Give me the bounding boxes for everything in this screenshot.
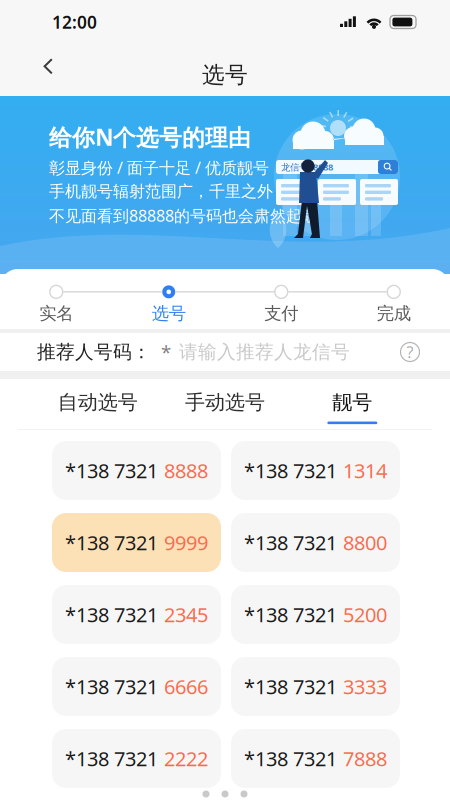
staticText: 龙信号88888 bbox=[281, 161, 333, 173]
button[interactable]: *138 7321 bbox=[52, 513, 221, 572]
staticText: 3333 bbox=[343, 673, 387, 700]
staticText: 自动选号 bbox=[58, 390, 138, 415]
staticText: 推荐人号码： bbox=[37, 340, 151, 363]
staticText: 给你N个选号的理由 bbox=[49, 122, 251, 152]
button[interactable]: 手动选号 bbox=[161, 379, 289, 429]
staticText: 实名 bbox=[39, 303, 73, 324]
staticText: 9999 bbox=[164, 529, 208, 556]
button[interactable]: Back bbox=[0, 46, 72, 94]
staticText: *138 7321 bbox=[65, 529, 158, 556]
button[interactable]: *138 7321 bbox=[52, 441, 221, 500]
staticText: *138 7321 bbox=[244, 673, 337, 700]
staticText: *138 7321 bbox=[244, 601, 337, 628]
staticText: 5200 bbox=[343, 601, 387, 628]
staticText: 6666 bbox=[164, 673, 208, 700]
staticText: *138 7321 bbox=[244, 529, 337, 556]
button[interactable]: *138 7321 bbox=[52, 585, 221, 644]
staticText: 7888 bbox=[343, 745, 387, 772]
button[interactable]: *138 7321 bbox=[52, 657, 221, 716]
staticText: * bbox=[161, 340, 171, 364]
staticText: 2222 bbox=[164, 745, 208, 772]
button[interactable]: 自动选号 bbox=[34, 379, 161, 429]
button[interactable]: 靓号 bbox=[289, 379, 416, 429]
staticText: 8800 bbox=[343, 529, 387, 556]
staticText: 8888 bbox=[164, 457, 208, 484]
button[interactable]: *138 7321 bbox=[231, 729, 400, 788]
staticText: *138 7321 bbox=[65, 457, 158, 484]
staticText: *138 7321 bbox=[65, 673, 158, 700]
staticText: 靓号 bbox=[332, 390, 372, 415]
staticText: *138 7321 bbox=[244, 745, 337, 772]
staticText: *138 7321 bbox=[244, 457, 337, 484]
staticText: 选号 bbox=[152, 303, 186, 324]
button[interactable]: *138 7321 bbox=[52, 729, 221, 788]
button[interactable]: *138 7321 bbox=[231, 585, 400, 644]
staticText: 12:00 bbox=[52, 10, 97, 33]
staticText: 选号 bbox=[202, 61, 248, 89]
staticText: 支付 bbox=[264, 303, 298, 324]
staticText: 请输入推荐人龙信号 bbox=[179, 340, 350, 363]
staticText: 不见面看到88888的号码也会肃然起敬 bbox=[49, 205, 318, 226]
staticText: *138 7321 bbox=[65, 601, 158, 628]
button[interactable]: *138 7321 bbox=[231, 513, 400, 572]
staticText: 完成 bbox=[377, 303, 411, 324]
staticText: 彰显身份 / 面子十足 / 优质靓号 bbox=[49, 157, 269, 178]
staticText: 手机靓号辐射范围广，千里之外 bbox=[49, 182, 273, 201]
staticText: 2345 bbox=[164, 601, 208, 628]
button[interactable]: *138 7321 bbox=[231, 657, 400, 716]
staticText: 手动选号 bbox=[185, 390, 265, 415]
button[interactable]: *138 7321 bbox=[231, 441, 400, 500]
button[interactable]: 推荐人号码： bbox=[0, 333, 450, 371]
staticText: ? bbox=[406, 341, 413, 363]
staticText: *138 7321 bbox=[65, 745, 158, 772]
staticText: 1314 bbox=[343, 457, 387, 484]
